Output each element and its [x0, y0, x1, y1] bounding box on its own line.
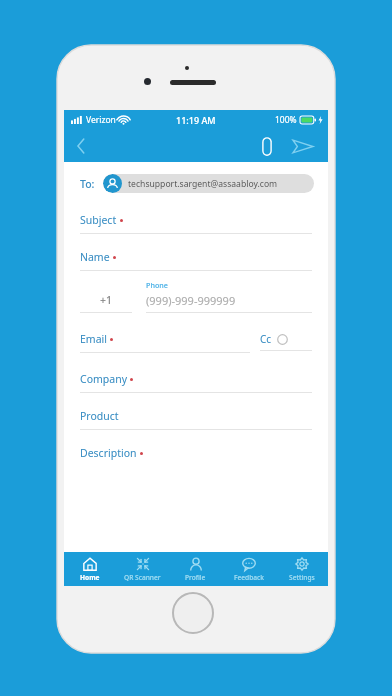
- button[interactable]: Feedback: [222, 552, 275, 586]
- staticText: (999)-999-999999: [146, 293, 236, 308]
- button[interactable]: Product: [80, 409, 312, 423]
- button[interactable]: Name: [80, 250, 312, 264]
- staticText: QR Scanner: [124, 573, 161, 582]
- button[interactable]: Profile: [169, 552, 222, 586]
- staticText: Verizon: [86, 114, 116, 126]
- button[interactable]: Cc: [260, 332, 312, 346]
- staticText: Settings: [289, 573, 315, 582]
- staticText: Cc: [260, 332, 272, 346]
- staticText: Feedback: [234, 573, 264, 582]
- staticText: Home: [80, 573, 100, 582]
- staticText: Email: [80, 332, 107, 346]
- staticText: To:: [80, 177, 95, 191]
- button[interactable]: Back: [64, 130, 98, 162]
- staticText: Product: [80, 409, 119, 423]
- button[interactable]: Company: [80, 372, 312, 386]
- button[interactable]: Subject: [80, 213, 312, 227]
- button[interactable]: Home: [64, 552, 116, 586]
- button[interactable]: QR Scanner: [116, 552, 169, 586]
- staticText: techsupport.sargent@assaabloy.com: [128, 178, 278, 190]
- staticText: 11:19 AM: [176, 114, 216, 126]
- staticText: +1: [100, 293, 113, 307]
- button[interactable]: Description: [80, 446, 312, 460]
- staticText: Company: [80, 372, 127, 386]
- staticText: Description: [80, 446, 137, 460]
- button[interactable]: techsupport.sargent@assaabloy.com: [103, 174, 314, 193]
- button[interactable]: Attach: [252, 131, 282, 161]
- staticText: Profile: [185, 573, 206, 582]
- button[interactable]: Settings: [275, 552, 328, 586]
- staticText: 100%: [275, 114, 297, 126]
- staticText: Phone: [146, 280, 168, 290]
- staticText: Subject: [80, 213, 117, 227]
- staticText: Name: [80, 250, 110, 264]
- button[interactable]: Send: [288, 131, 318, 161]
- other: Home button: [172, 592, 214, 634]
